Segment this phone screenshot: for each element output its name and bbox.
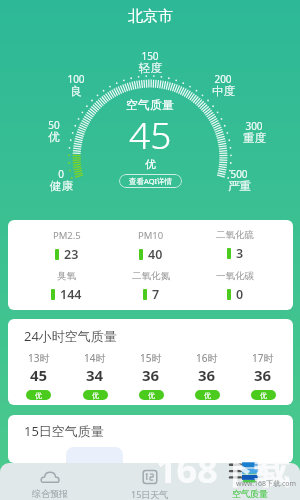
staticText: 45 — [30, 365, 48, 385]
staticText: 0 — [58, 167, 64, 181]
staticText: 中度 — [212, 84, 235, 98]
staticText: 17时 — [252, 351, 274, 365]
staticText: 13时 — [28, 351, 50, 365]
staticText: 500 — [230, 167, 248, 181]
staticText: PM10 — [138, 229, 164, 242]
button[interactable]: 查看AQI详情 — [119, 174, 182, 188]
staticText: 北京市 — [128, 7, 173, 26]
staticText: 优 — [204, 391, 211, 400]
staticText: 二氧化硫 — [216, 229, 254, 241]
staticText: 14时 — [84, 351, 106, 365]
staticText: 45 — [129, 109, 172, 159]
staticText: 空气质量 — [126, 97, 174, 112]
staticText: 300 — [245, 119, 263, 133]
staticText: PM2.5 — [53, 229, 81, 242]
staticText: 15日空气质量 — [24, 422, 104, 440]
staticText: 15日天气 — [131, 488, 169, 500]
staticText: 168下载 — [156, 445, 290, 494]
staticText: 重度 — [243, 131, 266, 145]
staticText: 一氧化碳 — [216, 270, 254, 282]
staticText: 36 — [142, 365, 160, 385]
staticText: 优 — [145, 157, 156, 171]
staticText: 200 — [214, 72, 232, 86]
staticText: 严重 — [228, 179, 251, 193]
staticText: 综合预报 — [32, 488, 68, 499]
button[interactable]: 综合预报 — [0, 463, 100, 500]
staticText: 100 — [67, 72, 85, 86]
staticText: 二氧化氮 — [132, 270, 170, 282]
staticText: 40 — [148, 246, 163, 263]
staticText: 0 — [236, 286, 244, 303]
staticText: 36 — [254, 365, 272, 385]
staticText: 50 — [48, 118, 60, 132]
staticText: 轻度 — [139, 61, 162, 75]
staticText: 空气质量 — [232, 488, 268, 499]
staticText: 健康 — [50, 179, 73, 193]
staticText: 150 — [141, 49, 159, 63]
staticText: 臭氧 — [57, 270, 76, 282]
staticText: 优 — [35, 391, 42, 400]
button[interactable]: 15日天气 — [100, 463, 200, 500]
staticText: 查看AQI详情 — [129, 176, 173, 186]
staticText: 优 — [148, 391, 155, 400]
staticText: 7 — [152, 286, 160, 303]
staticText: 良 — [70, 84, 82, 98]
staticText: 23 — [64, 246, 79, 263]
staticText: 优 — [260, 391, 267, 400]
staticText: 34 — [86, 365, 104, 385]
staticText: 优 — [48, 130, 60, 144]
staticText: 3 — [236, 245, 244, 262]
staticText: 36 — [198, 365, 216, 385]
staticText: 优 — [92, 391, 99, 400]
staticText: 16时 — [196, 351, 218, 365]
staticText: 15时 — [140, 351, 162, 365]
staticText: www.168下载.com — [236, 479, 297, 489]
staticText: 24小时空气质量 — [24, 327, 117, 345]
staticText: 144 — [60, 286, 82, 303]
button[interactable]: 空气质量 — [200, 463, 300, 500]
